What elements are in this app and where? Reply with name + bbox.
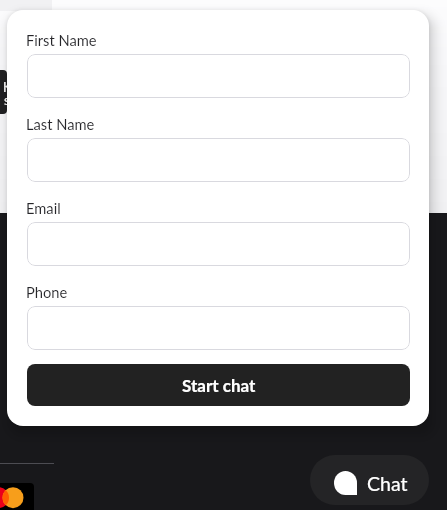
staticText: Chat (367, 472, 408, 495)
button[interactable]: Start chat (27, 364, 410, 406)
button[interactable] (27, 222, 410, 266)
button[interactable] (27, 138, 410, 182)
staticText: Last Name (26, 115, 95, 133)
button[interactable] (27, 54, 410, 98)
staticText: s (4, 92, 7, 108)
button[interactable]: Chat (310, 455, 429, 505)
staticText: Ky (3, 79, 7, 95)
button[interactable]: Open panel (0, 70, 7, 114)
staticText: First Name (26, 31, 97, 49)
staticText: Phone (26, 283, 68, 301)
button[interactable] (27, 306, 410, 350)
other: Chat (334, 471, 357, 495)
staticText: Start chat (182, 375, 256, 395)
staticText: Email (26, 199, 61, 217)
